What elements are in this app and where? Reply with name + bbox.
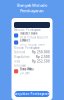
staticText: Rp 2.500: [36, 55, 50, 59]
staticText: OVO, Gopay, Dana: [20, 43, 44, 46]
staticText: Total: [14, 60, 20, 63]
staticText: E-Wallet: [20, 39, 30, 42]
staticText: Transfer Bank: [20, 32, 37, 35]
staticText: Biaya Admin: [14, 55, 30, 59]
button[interactable]: E-Wallet: [11, 39, 52, 46]
staticText: 24 Jam: [20, 71, 29, 75]
staticText: Pembayaran: [20, 8, 44, 13]
button[interactable]: Batas Waktu: [11, 68, 52, 75]
staticText: Rp 250.000: [32, 50, 50, 54]
staticText: Metode Pembayaran: [14, 28, 41, 32]
staticText: Banyak Metode: [17, 2, 47, 8]
staticText: Batas Waktu: [20, 68, 34, 71]
staticText: Subtotal: [14, 50, 25, 54]
button[interactable]: Lanjutkan Pembayaran: [14, 91, 49, 97]
staticText: Rincian Pembayaran: [14, 46, 40, 50]
staticText: Informasi: [14, 64, 26, 67]
staticText: Lanjutkan Pembayaran: [14, 92, 49, 96]
staticText: BCA Virtual Account: [20, 36, 48, 39]
staticText: Rp 252.500: [32, 60, 50, 63]
button[interactable]: Transfer Bank: [11, 32, 52, 39]
